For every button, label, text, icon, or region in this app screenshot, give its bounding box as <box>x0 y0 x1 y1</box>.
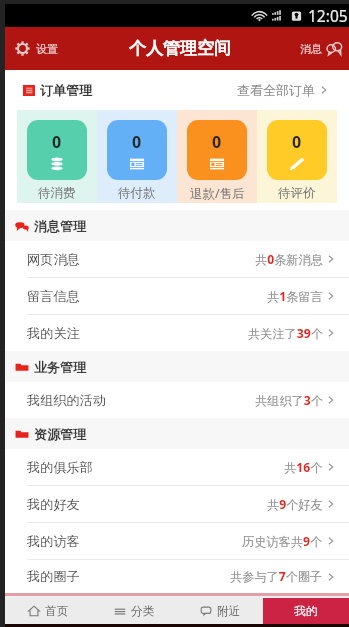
button[interactable]: Home <box>5 598 91 624</box>
staticText: 资源管理 <box>34 426 86 442</box>
button[interactable]: 网页消息 <box>5 241 349 277</box>
staticText: 待消费 <box>38 185 76 201</box>
staticText: 共组织了3个 <box>255 392 323 409</box>
button[interactable]: Categories <box>91 598 177 624</box>
other: Home <box>28 605 40 617</box>
staticText: 我的俱乐部 <box>27 459 93 476</box>
staticText: 0 <box>132 131 142 153</box>
staticText: 我的好友 <box>27 496 80 513</box>
staticText: 共1条留言 <box>267 288 323 305</box>
staticText: 0 <box>292 131 302 153</box>
staticText: 0 <box>212 131 222 153</box>
staticText: 设置 <box>36 42 58 56</box>
button[interactable]: 0 <box>177 110 257 203</box>
staticText: 共参与了7个圈子 <box>230 568 323 585</box>
button[interactable]: 订单管理 <box>5 70 349 110</box>
other: Categories <box>114 605 126 617</box>
button[interactable]: 设置 <box>5 27 68 70</box>
staticText: 共9个好友 <box>267 496 323 513</box>
button[interactable]: 0 <box>17 110 97 203</box>
staticText: 个人管理空间 <box>129 38 231 59</box>
staticText: 我的访客 <box>27 533 80 550</box>
button[interactable]: Nearby <box>177 598 263 624</box>
button[interactable]: 留言信息 <box>5 278 349 314</box>
staticText: 共0条新消息 <box>255 251 323 268</box>
button[interactable]: 我的访客 <box>5 523 349 559</box>
staticText: 我的圈子 <box>27 568 80 585</box>
staticText: 消息管理 <box>34 218 86 234</box>
button[interactable]: 0 <box>97 110 177 203</box>
staticText: 订单管理 <box>40 82 92 98</box>
button[interactable]: 消息 <box>290 27 349 70</box>
staticText: 历史访客共9个 <box>242 533 323 550</box>
staticText: 待付款 <box>118 185 156 201</box>
button[interactable]: 我的关注 <box>5 315 349 351</box>
staticText: 退款/售后 <box>190 185 245 202</box>
staticText: 首页 <box>45 604 69 619</box>
staticText: 网页消息 <box>27 251 80 268</box>
staticText: 12:05 <box>308 5 348 26</box>
staticText: 我的 <box>294 604 318 619</box>
button[interactable]: 我组织的活动 <box>5 382 349 418</box>
staticText: 留言信息 <box>27 288 80 305</box>
staticText: 我的关注 <box>27 325 80 342</box>
staticText: 我组织的活动 <box>27 392 107 409</box>
staticText: 0 <box>52 131 62 153</box>
staticText: 业务管理 <box>34 359 86 375</box>
staticText: 查看全部订单 <box>237 82 315 98</box>
staticText: 共关注了39个 <box>248 325 323 342</box>
button[interactable]: 我的圈子 <box>5 560 349 593</box>
staticText: 待评价 <box>278 185 316 201</box>
staticText: 共16个 <box>284 459 323 476</box>
other: Nearby <box>200 605 212 617</box>
staticText: 消息 <box>300 42 322 56</box>
button[interactable]: 我的俱乐部 <box>5 449 349 485</box>
button[interactable]: 我的好友 <box>5 486 349 522</box>
button[interactable]: 0 <box>257 110 337 203</box>
button[interactable]: 我的 <box>263 598 349 624</box>
staticText: 附近 <box>217 604 241 619</box>
staticText: 分类 <box>131 604 155 619</box>
